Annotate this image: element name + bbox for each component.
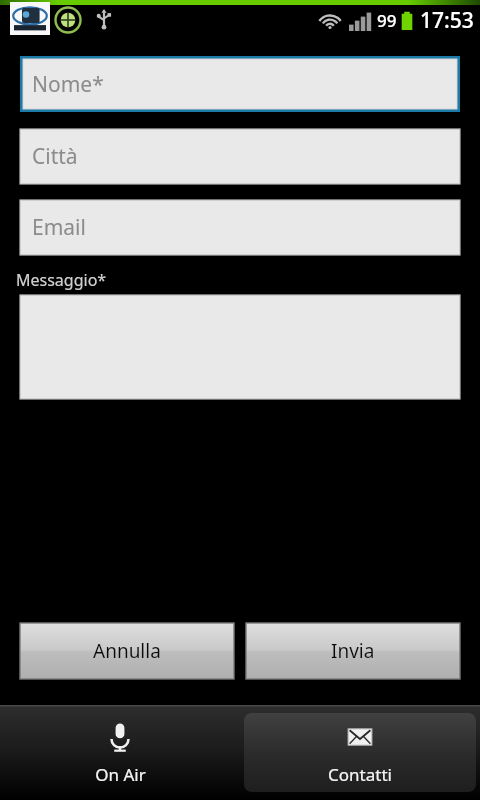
- staticText: 17:53: [420, 6, 474, 35]
- button[interactable]: Contatti: [244, 713, 476, 792]
- button[interactable]: Annulla: [20, 623, 234, 679]
- button[interactable]: Invia: [246, 623, 460, 679]
- staticText: On Air: [95, 763, 146, 786]
- staticText: Messaggio*: [16, 269, 107, 291]
- staticText: Annulla: [93, 638, 161, 664]
- staticText: Città: [32, 142, 78, 171]
- button[interactable]: Nome*: [20, 56, 460, 112]
- staticText: Contatti: [328, 763, 392, 786]
- button[interactable]: Città: [20, 129, 460, 184]
- staticText: Invia: [331, 638, 375, 664]
- button[interactable]: On Air: [4, 713, 236, 792]
- button[interactable]: [20, 295, 460, 399]
- staticText: 99: [377, 9, 397, 32]
- staticText: Nome*: [32, 70, 104, 99]
- button[interactable]: Email: [20, 200, 460, 255]
- staticText: Email: [32, 213, 86, 242]
